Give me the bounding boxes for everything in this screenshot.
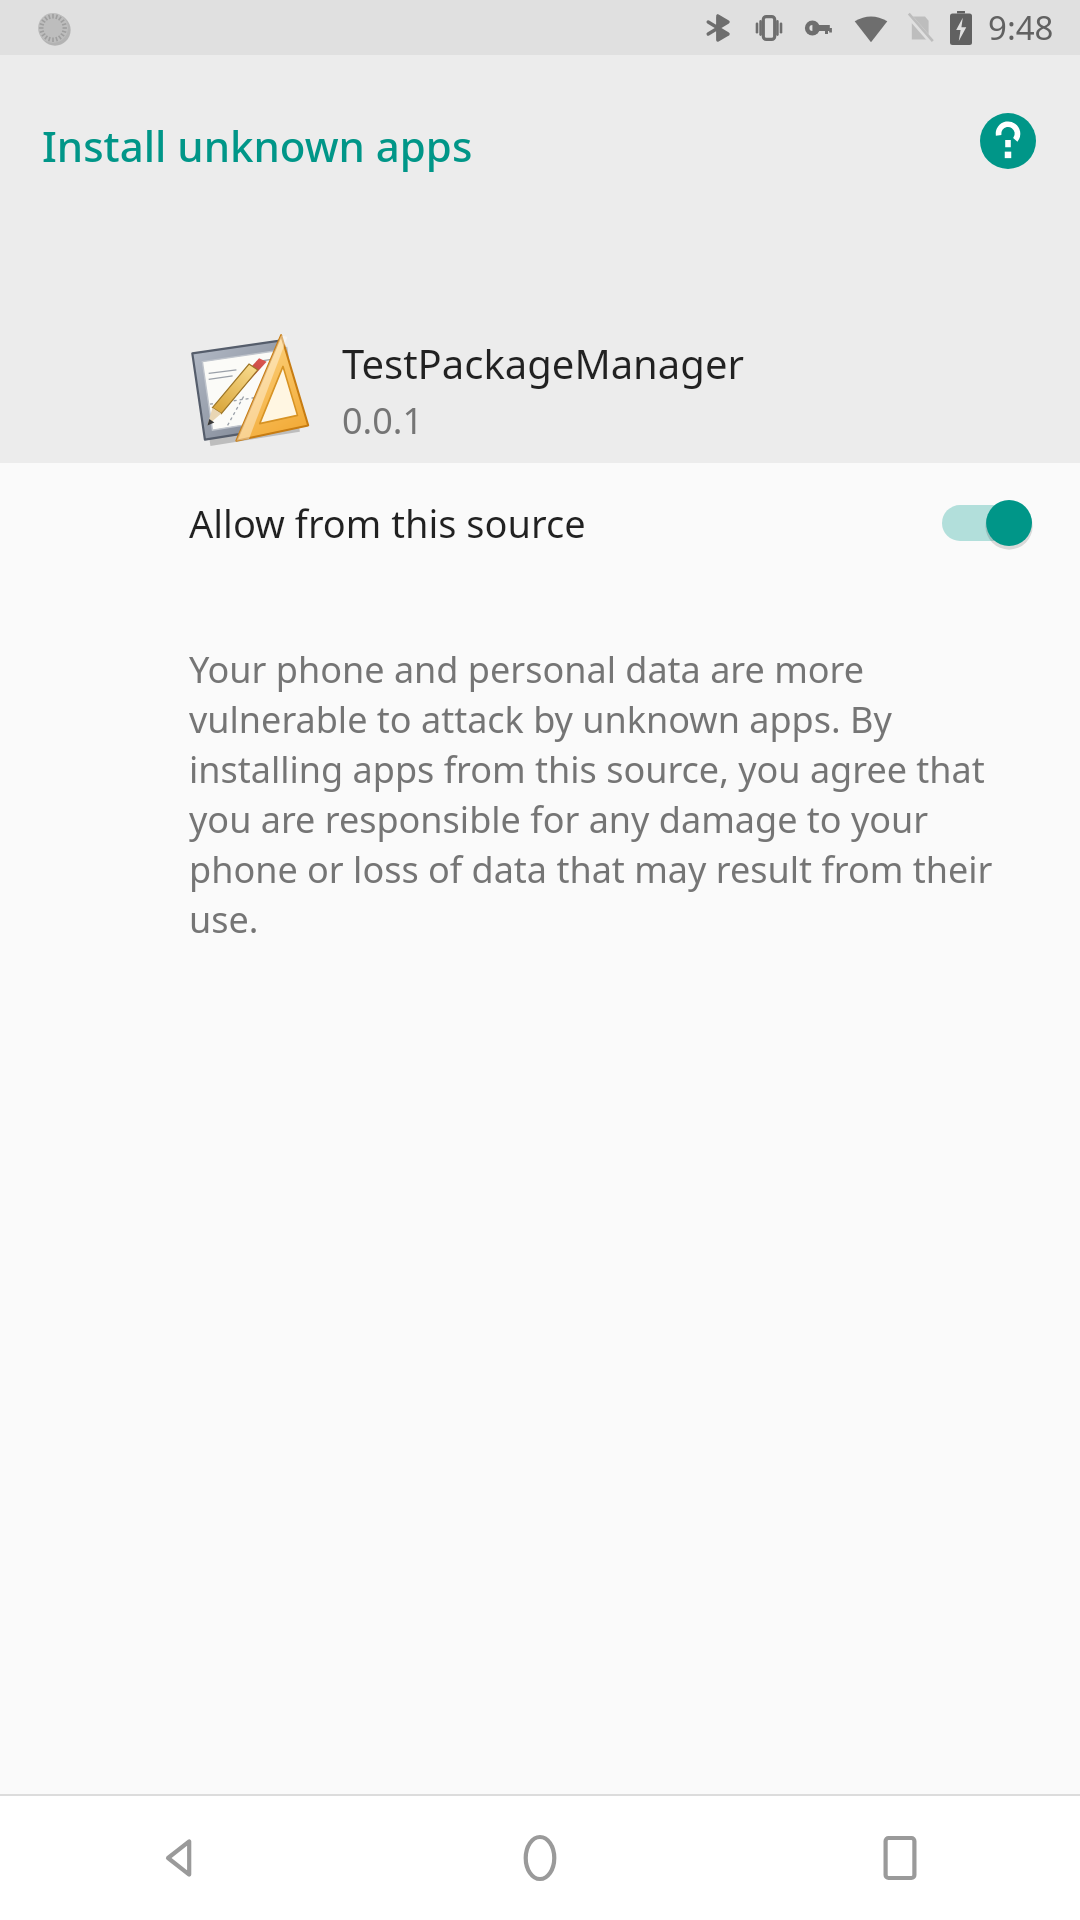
button[interactable]: Back [0, 1796, 360, 1920]
staticText: 9:48 [988, 5, 1054, 50]
button[interactable]: Allow from this source [0, 463, 1080, 583]
staticText: Allow from this source [189, 497, 942, 549]
staticText: TestPackageManager [342, 336, 744, 390]
button[interactable]: Help [960, 93, 1056, 189]
staticText: 0.0.1 [342, 396, 424, 445]
staticText: Your phone and personal data are more vu… [189, 645, 1022, 944]
button[interactable]: Home [360, 1796, 720, 1920]
button[interactable]: Allow from this source toggle [942, 492, 1034, 554]
staticText: Install unknown apps [42, 117, 473, 174]
button[interactable]: Recent apps [720, 1796, 1080, 1920]
